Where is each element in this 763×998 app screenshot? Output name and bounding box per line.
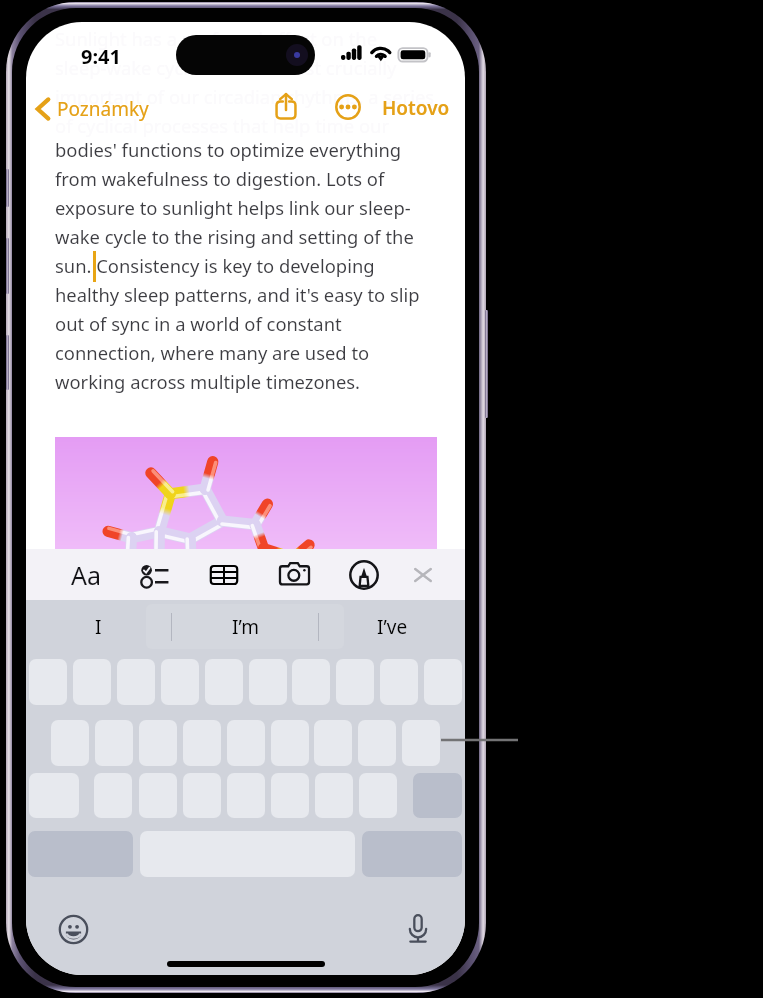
button[interactable]: Table: [202, 549, 246, 600]
button[interactable]: Key: [336, 659, 374, 705]
button[interactable]: Key: [402, 720, 440, 766]
button[interactable]: Key: [315, 773, 353, 818]
button[interactable]: Key: [139, 720, 177, 766]
button[interactable]: Key: [161, 659, 199, 705]
button[interactable]: Camera: [272, 549, 316, 600]
button[interactable]: I’ve: [319, 600, 465, 653]
staticText: 9:41: [81, 43, 121, 70]
staticText: I: [95, 614, 102, 640]
button[interactable]: Share: [265, 86, 307, 128]
staticText: sun. Consistency is key to developing: [55, 253, 375, 278]
button[interactable]: Key: [292, 659, 330, 705]
staticText: working across multiple timezones.: [55, 369, 361, 394]
button[interactable]: Key: [94, 773, 132, 818]
button[interactable]: Markup: [342, 549, 386, 600]
button[interactable]: More: [329, 88, 367, 126]
button[interactable]: Checklist: [133, 549, 177, 600]
button[interactable]: Hotovo: [378, 86, 454, 130]
button[interactable]: Key: [73, 659, 111, 705]
button[interactable]: Key: [183, 720, 221, 766]
staticText: I’m: [232, 614, 259, 640]
staticText: Aa: [71, 558, 102, 592]
staticText: wake cycle to the rising and setting of …: [55, 224, 414, 249]
button[interactable]: Key: [205, 659, 243, 705]
button[interactable]: Poznámky: [30, 96, 155, 122]
button[interactable]: Key: [227, 720, 265, 766]
button[interactable]: Key: [139, 773, 177, 818]
button[interactable]: Dictation: [402, 912, 434, 944]
button[interactable]: Key: [51, 720, 89, 766]
button[interactable]: Key: [314, 720, 352, 766]
button[interactable]: I: [26, 600, 171, 653]
button[interactable]: I’m: [172, 600, 318, 653]
staticText: healthy sleep patterns, and it's easy to…: [55, 282, 420, 307]
button[interactable]: Key: [183, 773, 221, 818]
button[interactable]: Key: [271, 773, 309, 818]
button[interactable]: Key: [117, 659, 155, 705]
button[interactable]: Key: [249, 659, 287, 705]
staticText: I’ve: [377, 614, 408, 640]
button[interactable]: Key: [358, 720, 396, 766]
button[interactable]: Key: [227, 773, 265, 818]
staticText: out of sync in a world of constant: [55, 311, 342, 336]
staticText: exposure to sunlight helps link our slee…: [55, 195, 411, 220]
button[interactable]: Key: [380, 659, 418, 705]
button[interactable]: Close: [401, 549, 445, 600]
button[interactable]: Key: [271, 720, 309, 766]
staticText: connection, where many are used to: [55, 340, 370, 365]
button[interactable]: Key: [424, 659, 462, 705]
button[interactable]: Emoji: [58, 914, 89, 945]
staticText: Poznámky: [57, 96, 149, 122]
staticText: bodies' functions to optimize everything: [55, 137, 402, 162]
staticText: Sunlight has a profound effect on the: [55, 26, 378, 51]
staticText: Hotovo: [382, 95, 450, 121]
button[interactable]: Key: [359, 773, 397, 818]
staticText: from wakefulness to digestion. Lots of: [55, 166, 385, 191]
button[interactable]: Key: [29, 659, 67, 705]
button[interactable]: Key: [95, 720, 133, 766]
staticText: important of our circadian rhythms, a se…: [55, 84, 435, 109]
button[interactable]: Format: [64, 549, 108, 600]
staticText: sleep-wake cycle. It is the most crucial…: [55, 55, 397, 80]
staticText: of cyclical processes that help time our: [55, 113, 390, 138]
